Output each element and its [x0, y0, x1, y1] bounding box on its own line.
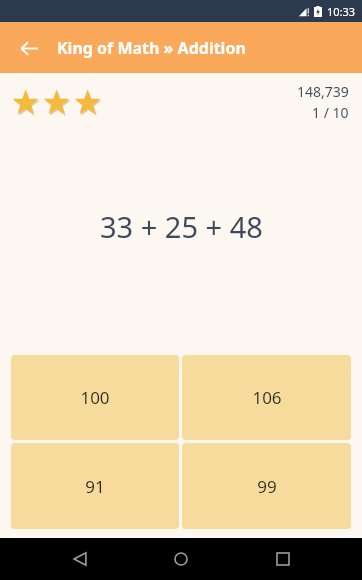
- button[interactable]: Back: [9, 28, 49, 68]
- button[interactable]: Recent apps: [261, 538, 305, 580]
- staticText: 10:33: [327, 4, 356, 19]
- staticText: 91: [85, 475, 105, 498]
- button[interactable]: 100: [11, 355, 179, 440]
- staticText: 33 + 25 + 48: [100, 207, 263, 246]
- staticText: 106: [252, 386, 282, 409]
- staticText: 99: [257, 475, 277, 498]
- button[interactable]: 106: [182, 355, 351, 440]
- button[interactable]: Home: [159, 538, 203, 580]
- button[interactable]: 99: [182, 443, 351, 529]
- button[interactable]: Back: [58, 538, 102, 580]
- staticText: 1 / 10: [312, 103, 349, 122]
- button[interactable]: 91: [11, 443, 179, 529]
- staticText: 100: [80, 386, 110, 409]
- staticText: King of Math » Addition: [57, 37, 246, 59]
- staticText: 148,739: [297, 82, 349, 101]
